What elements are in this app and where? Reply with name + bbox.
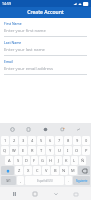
button[interactable]: Comma xyxy=(17,176,24,185)
button[interactable]: 2 xyxy=(10,136,18,145)
button[interactable]: Siguiente xyxy=(73,176,90,185)
staticText: J xyxy=(58,158,60,163)
button[interactable]: F xyxy=(31,156,38,165)
button[interactable]: Clipboard xyxy=(24,125,33,134)
button[interactable]: E xyxy=(19,146,27,155)
staticText: S xyxy=(17,158,20,163)
staticText: K xyxy=(65,158,68,163)
staticText: M xyxy=(71,168,75,173)
staticText: 8 xyxy=(67,138,70,143)
button[interactable]: B xyxy=(51,166,59,175)
staticText: Create Account xyxy=(27,9,64,16)
staticText: C xyxy=(36,168,39,173)
button[interactable]: D xyxy=(23,156,30,165)
button[interactable]: C xyxy=(33,166,41,175)
button[interactable]: 7 xyxy=(55,136,63,145)
staticText: Enter your email address xyxy=(4,66,54,72)
staticText: O xyxy=(75,148,79,153)
button[interactable]: S xyxy=(14,156,22,165)
button[interactable]: 3 xyxy=(19,136,27,145)
button[interactable]: N xyxy=(60,166,68,175)
button[interactable]: R xyxy=(28,146,36,155)
staticText: Q xyxy=(3,148,7,153)
staticText: E xyxy=(22,148,25,153)
button[interactable]: Period xyxy=(65,176,72,185)
button[interactable]: 5 xyxy=(37,136,45,145)
button[interactable]: 4 xyxy=(28,136,36,145)
button[interactable]: K xyxy=(63,156,70,165)
button[interactable]: W xyxy=(10,146,18,155)
staticText: G xyxy=(41,158,44,163)
staticText: Z xyxy=(18,168,21,173)
button[interactable]: 1 xyxy=(1,136,9,145)
staticText: W xyxy=(12,148,16,153)
button[interactable]: H xyxy=(47,156,54,165)
button[interactable]: T xyxy=(37,146,45,155)
button[interactable]: Keyboard switcher xyxy=(71,189,81,199)
button[interactable]: U xyxy=(55,146,63,155)
button[interactable]: First Name xyxy=(4,21,87,37)
staticText: Last Name xyxy=(4,40,22,45)
button[interactable]: Emoji xyxy=(8,125,17,134)
button[interactable]: Shift xyxy=(1,166,14,175)
staticText: Ñ xyxy=(81,158,85,163)
staticText: 9 xyxy=(76,138,79,143)
staticText: H xyxy=(49,158,52,163)
button[interactable]: 6 xyxy=(46,136,54,145)
button[interactable]: L xyxy=(71,156,78,165)
staticText: L xyxy=(73,158,76,163)
staticText: N xyxy=(62,168,66,173)
staticText: Siguiente xyxy=(76,179,88,183)
staticText: V xyxy=(45,168,48,173)
button[interactable]: Ñ xyxy=(79,156,86,165)
staticText: Español(US) xyxy=(37,179,53,183)
staticText: , xyxy=(20,178,21,183)
button[interactable]: Z xyxy=(15,166,23,175)
button[interactable]: Sticker xyxy=(41,125,50,134)
button[interactable]: Home xyxy=(30,189,40,199)
staticText: R xyxy=(31,148,34,153)
button[interactable]: Last Name xyxy=(4,40,87,56)
button[interactable]: 9 xyxy=(73,136,81,145)
staticText: D xyxy=(25,158,28,163)
button[interactable]: Back xyxy=(51,189,61,199)
staticText: X xyxy=(27,168,30,173)
button[interactable]: O xyxy=(73,146,81,155)
button[interactable]: !#1 xyxy=(1,176,16,185)
staticText: 3 xyxy=(22,138,25,143)
button[interactable]: G xyxy=(39,156,46,165)
button[interactable]: M xyxy=(69,166,77,175)
button[interactable]: Q xyxy=(1,146,9,155)
staticText: 4 xyxy=(31,138,34,143)
button[interactable]: Translate xyxy=(58,125,67,134)
button[interactable]: Backspace xyxy=(78,166,90,175)
staticText: B xyxy=(54,168,57,173)
staticText: 14:59 xyxy=(2,1,11,6)
button[interactable]: 0 xyxy=(82,136,90,145)
button[interactable]: X xyxy=(24,166,32,175)
staticText: 2 xyxy=(13,138,16,143)
staticText: A xyxy=(8,158,11,163)
staticText: . xyxy=(68,178,69,183)
staticText: 6 xyxy=(49,138,52,143)
staticText: Email xyxy=(4,59,13,64)
button[interactable]: J xyxy=(55,156,62,165)
staticText: 7 xyxy=(58,138,61,143)
staticText: U xyxy=(58,148,61,153)
button[interactable]: I xyxy=(64,146,72,155)
staticText: P xyxy=(85,148,88,153)
staticText: Enter your last name xyxy=(4,47,45,53)
staticText: F xyxy=(33,158,36,163)
staticText: First Name xyxy=(4,21,22,26)
button[interactable]: Y xyxy=(46,146,54,155)
button[interactable]: Email xyxy=(4,59,87,75)
button[interactable]: V xyxy=(42,166,50,175)
button[interactable]: More xyxy=(74,125,83,134)
button[interactable]: Space xyxy=(25,176,64,185)
staticText: 1 xyxy=(4,138,7,143)
button[interactable]: A xyxy=(5,156,13,165)
button[interactable]: P xyxy=(82,146,90,155)
button[interactable]: Recents xyxy=(10,189,20,199)
staticText: 5 xyxy=(40,138,43,143)
button[interactable]: 8 xyxy=(64,136,72,145)
